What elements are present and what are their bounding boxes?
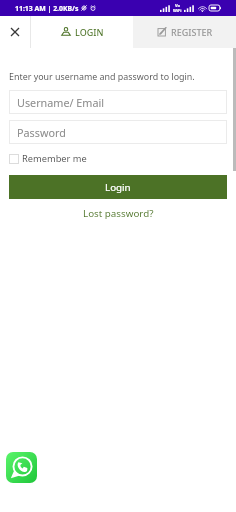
staticText: LOGIN bbox=[75, 26, 104, 38]
staticText: 11:13 AM | 2.0KB/s bbox=[15, 4, 79, 13]
staticText: Enter your username and password to logi… bbox=[9, 70, 195, 82]
button[interactable]: Lost password? bbox=[83, 207, 154, 220]
staticText: WiFi bbox=[173, 8, 182, 13]
button[interactable]: WhatsApp bbox=[6, 452, 37, 483]
staticText: Login bbox=[105, 181, 131, 194]
staticText: Password bbox=[17, 125, 66, 140]
button[interactable]: Remember me bbox=[9, 152, 87, 165]
button[interactable]: Username/ Email bbox=[9, 90, 227, 114]
staticText: Remember me bbox=[22, 152, 87, 165]
button[interactable]: REGISTER bbox=[133, 16, 236, 48]
staticText: Username/ Email bbox=[17, 95, 105, 110]
staticText: Vo bbox=[175, 3, 181, 8]
staticText: REGISTER bbox=[171, 26, 213, 38]
button[interactable]: Password bbox=[9, 120, 227, 144]
button[interactable]: LOGIN bbox=[31, 16, 133, 48]
button[interactable]: Close bbox=[0, 16, 30, 48]
button[interactable]: Login bbox=[9, 175, 227, 199]
